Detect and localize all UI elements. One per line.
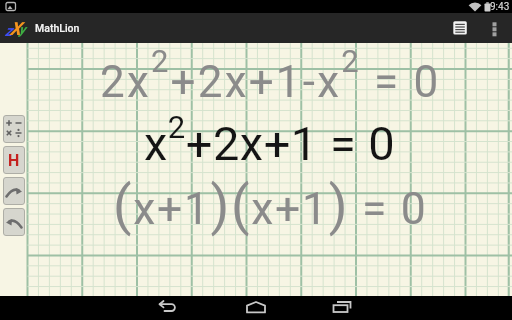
button[interactable] [149,296,189,320]
button[interactable] [486,13,504,43]
staticText: X [10,18,22,39]
staticText: MathLion [35,22,80,34]
staticText: z [5,22,13,40]
staticText: 2x2+2x+1-x2 = 0 [100,43,441,108]
staticText: y [19,22,26,37]
button[interactable]: H [3,146,25,174]
staticText: H [8,151,20,170]
staticText: 9:43 [490,1,510,13]
button[interactable] [3,115,25,143]
button[interactable] [3,177,25,205]
staticText: x2+2x+1 = 0 [144,109,396,172]
button[interactable] [448,13,474,43]
button[interactable] [322,296,362,320]
button[interactable] [3,208,25,236]
staticText: (x+1)(x+1) = 0 [113,174,428,237]
button[interactable] [236,296,276,320]
